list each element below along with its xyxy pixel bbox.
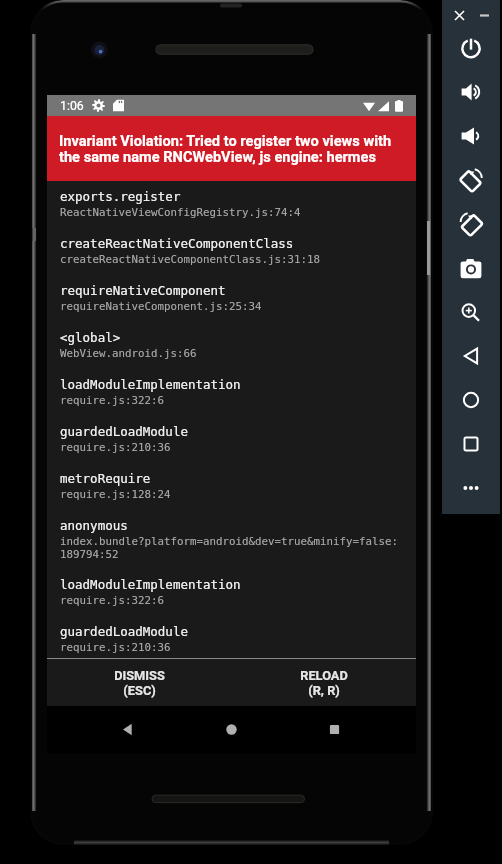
button[interactable]: Volume up xyxy=(454,75,488,109)
staticText: require.js:128:24 xyxy=(60,488,171,501)
staticText: Invariant Violation: Tried to register t… xyxy=(59,132,408,166)
button[interactable]: Home xyxy=(207,706,255,752)
staticText: anonymous xyxy=(60,518,128,533)
button[interactable]: Close xyxy=(448,4,470,26)
button[interactable]: requireNativeComponent xyxy=(47,275,416,322)
staticText: guardedLoadModule xyxy=(60,424,188,439)
staticText: RELOAD xyxy=(300,668,348,683)
staticText: require.js:210:36 xyxy=(60,441,171,454)
staticText: requireNativeComponent.js:25:34 xyxy=(60,300,262,313)
button[interactable]: More xyxy=(454,471,488,505)
button[interactable]: Rotate right xyxy=(454,207,488,241)
staticText: requireNativeComponent xyxy=(60,283,226,298)
button[interactable]: Home xyxy=(454,383,488,417)
button[interactable]: loadModuleImplementation xyxy=(47,369,416,416)
button[interactable]: metroRequire xyxy=(47,463,416,510)
button[interactable]: guardedLoadModule xyxy=(47,416,416,463)
button[interactable]: anonymous xyxy=(47,510,416,569)
button[interactable]: Overview xyxy=(454,427,488,461)
button[interactable]: Recent apps xyxy=(310,706,358,752)
button[interactable]: Power xyxy=(454,31,488,65)
staticText: index.bundle?platform=android&dev=true&m… xyxy=(60,535,399,561)
button[interactable]: Zoom xyxy=(454,295,488,329)
button[interactable]: Back xyxy=(103,706,151,752)
staticText: ReactNativeViewConfigRegistry.js:74:4 xyxy=(60,206,301,219)
staticText: guardedLoadModule xyxy=(60,624,188,639)
button[interactable]: DISMISS xyxy=(47,659,231,706)
staticText: 1:06 xyxy=(60,99,84,113)
staticText: require.js:322:6 xyxy=(60,594,165,607)
button[interactable]: Rotate left xyxy=(454,163,488,197)
staticText: require.js:322:6 xyxy=(60,394,165,407)
staticText: <global> xyxy=(60,330,121,345)
staticText: DISMISS xyxy=(114,668,165,683)
staticText: exports.register xyxy=(60,189,181,204)
button[interactable]: RELOAD xyxy=(231,659,416,706)
staticText: WebView.android.js:66 xyxy=(60,347,197,360)
button[interactable]: exports.register xyxy=(47,181,416,228)
button[interactable]: Minimize xyxy=(473,4,495,26)
staticText: createReactNativeComponentClass.js:31:18 xyxy=(60,253,321,266)
staticText: require.js:210:36 xyxy=(60,641,171,654)
button[interactable]: Back xyxy=(454,339,488,373)
button[interactable]: guardedLoadModule xyxy=(47,616,416,658)
staticText: (R, R) xyxy=(308,683,340,698)
staticText: loadModuleImplementation xyxy=(60,577,241,592)
button[interactable]: createReactNativeComponentClass xyxy=(47,228,416,275)
button[interactable]: loadModuleImplementation xyxy=(47,569,416,616)
button[interactable]: Take screenshot xyxy=(454,251,488,285)
button[interactable]: <global> xyxy=(47,322,416,369)
staticText: loadModuleImplementation xyxy=(60,377,241,392)
staticText: createReactNativeComponentClass xyxy=(60,236,294,251)
staticText: (ESC) xyxy=(123,683,156,698)
button[interactable]: Volume down xyxy=(454,119,488,153)
staticText: metroRequire xyxy=(60,471,151,486)
